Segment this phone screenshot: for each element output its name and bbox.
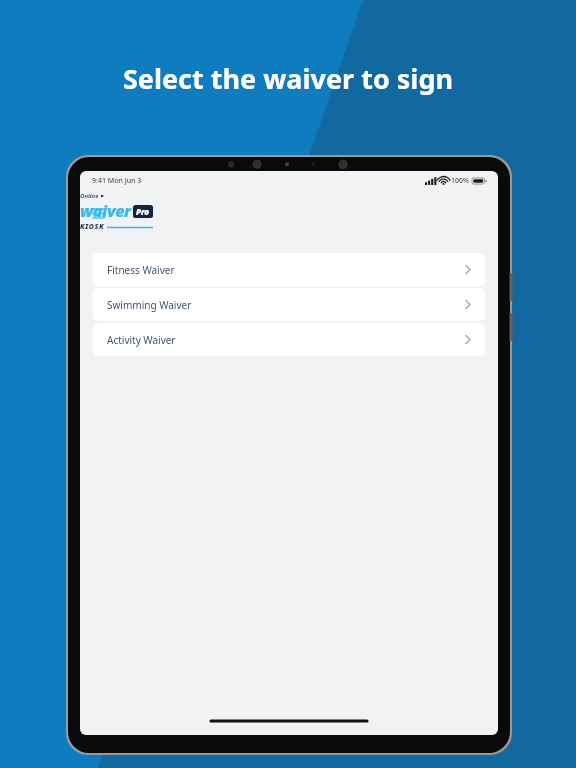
staticText: Swimming Waiver — [107, 298, 192, 312]
staticText: waiver — [80, 200, 131, 222]
staticText: 9:41 Mon Jun 3 — [92, 176, 142, 186]
button[interactable]: Fitness Waiver — [93, 253, 485, 286]
staticText: Pro — [136, 206, 150, 217]
button[interactable]: Menu — [86, 201, 110, 225]
staticText: KIOSK — [80, 222, 105, 232]
staticText: 100% — [451, 176, 469, 186]
button[interactable]: Swimming Waiver — [93, 288, 485, 321]
staticText: Select the waiver to sign — [0, 60, 576, 97]
staticText: Activity Waiver — [107, 333, 176, 347]
staticText: Online — [80, 192, 99, 200]
staticText: Fitness Waiver — [107, 263, 175, 277]
button[interactable]: Activity Waiver — [93, 323, 485, 356]
